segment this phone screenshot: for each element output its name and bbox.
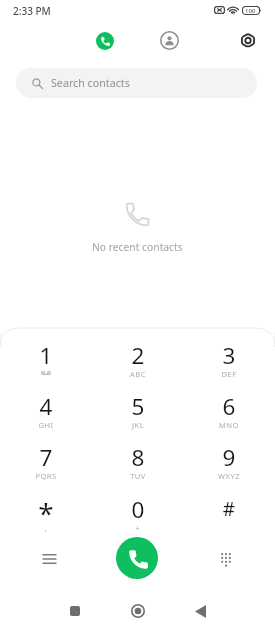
button[interactable]: Recents bbox=[87, 23, 122, 58]
staticText: 9 bbox=[184, 442, 274, 473]
staticText: ABC bbox=[93, 369, 183, 379]
button[interactable]: Home bbox=[118, 594, 158, 630]
staticText: TUV bbox=[93, 471, 183, 481]
staticText: DEF bbox=[184, 369, 274, 379]
staticText: 8 bbox=[93, 442, 183, 473]
staticText: PQRS bbox=[1, 471, 91, 481]
button[interactable]: 5 bbox=[93, 380, 183, 432]
button[interactable]: Settings bbox=[230, 23, 265, 58]
button[interactable]: 9 bbox=[184, 431, 274, 483]
staticText: Search contacts bbox=[51, 76, 130, 91]
staticText: 5 bbox=[93, 391, 183, 422]
button[interactable]: Dialpad bbox=[206, 539, 246, 579]
staticText: No recent contacts bbox=[92, 240, 183, 254]
staticText: 100 bbox=[245, 7, 256, 15]
button[interactable]: Back bbox=[180, 594, 220, 630]
staticText: 6 bbox=[184, 391, 274, 422]
staticText: # bbox=[184, 496, 274, 522]
staticText: 0 bbox=[93, 494, 183, 525]
staticText: 2 bbox=[93, 340, 183, 371]
staticText: GHI bbox=[1, 420, 91, 430]
staticText: 1 bbox=[1, 340, 91, 371]
staticText: 3 bbox=[184, 340, 274, 371]
button[interactable]: Call bbox=[116, 537, 158, 579]
staticText: WXYZ bbox=[184, 471, 274, 481]
staticText: * bbox=[1, 494, 91, 532]
button[interactable]: 1 bbox=[1, 329, 91, 381]
button[interactable]: Search contacts bbox=[16, 68, 257, 98]
button[interactable]: 7 bbox=[1, 431, 91, 483]
button[interactable]: 3 bbox=[184, 329, 274, 381]
staticText: 4 bbox=[1, 391, 91, 422]
staticText: JKL bbox=[93, 420, 183, 430]
staticText: 2:33 PM bbox=[13, 4, 51, 18]
button[interactable]: 0 bbox=[93, 483, 183, 535]
button[interactable]: 4 bbox=[1, 380, 91, 432]
button[interactable]: Recent apps bbox=[55, 594, 95, 630]
button[interactable]: * bbox=[1, 483, 91, 535]
button[interactable]: 6 bbox=[184, 380, 274, 432]
staticText: 7 bbox=[1, 442, 91, 473]
button[interactable]: 2 bbox=[93, 329, 183, 381]
button[interactable]: 8 bbox=[93, 431, 183, 483]
button[interactable]: # bbox=[184, 483, 274, 535]
button[interactable]: More options bbox=[29, 539, 69, 579]
staticText: + bbox=[93, 523, 183, 533]
staticText: MNO bbox=[184, 420, 274, 430]
button[interactable]: Contacts bbox=[152, 23, 187, 58]
